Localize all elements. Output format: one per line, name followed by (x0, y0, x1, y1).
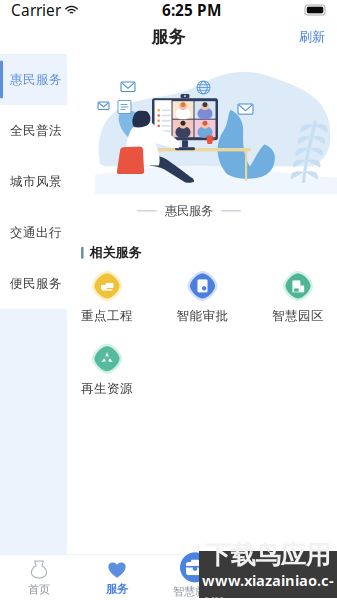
staticText: 城市风景 (10, 174, 62, 189)
staticText: 智慧就业 (173, 584, 217, 599)
staticText: 便民服务 (10, 276, 62, 291)
staticText: 交通出行 (10, 225, 62, 240)
staticText: 再生资源 (81, 381, 133, 396)
staticText: 服务 (151, 26, 185, 48)
staticText: 智慧园区 (272, 308, 324, 324)
staticText: 刷新 (299, 29, 325, 45)
staticText: 重点工程 (81, 308, 133, 324)
button[interactable]: 惠民服务 (0, 54, 67, 105)
button[interactable]: 智慧就业 (156, 557, 234, 599)
button[interactable]: 服务 (78, 558, 156, 598)
staticText: 首页 (28, 582, 50, 597)
staticText: 惠民服务 (165, 203, 213, 219)
button[interactable]: 便民服务 (0, 258, 67, 309)
staticText: 相关服务 (90, 245, 142, 261)
button[interactable]: 交通出行 (0, 207, 67, 258)
staticText: www.xiazainiao.com (202, 571, 334, 600)
button[interactable]: 城市风景 (0, 156, 67, 207)
staticText: 智能审批 (176, 308, 228, 324)
staticText: 服务 (106, 582, 128, 596)
button[interactable]: 首页 (0, 558, 78, 598)
staticText: 全民普法 (10, 123, 62, 138)
staticText: 惠民服务 (10, 72, 62, 87)
staticText: Carrier (11, 0, 61, 20)
button[interactable]: 智能审批 (155, 271, 250, 324)
button[interactable]: 再生资源 (59, 344, 155, 396)
staticText: 6:25 PM (162, 0, 221, 20)
button[interactable]: 全民普法 (0, 105, 67, 156)
button[interactable]: 刷新 (287, 21, 337, 53)
button[interactable]: 智慧园区 (250, 271, 337, 324)
staticText: 下载鸟应用 (205, 539, 330, 571)
button[interactable]: 重点工程 (59, 271, 155, 324)
